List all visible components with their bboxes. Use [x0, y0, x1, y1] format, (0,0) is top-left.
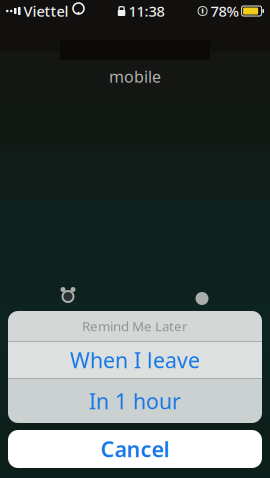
button[interactable]: Remind Me	[38, 284, 98, 306]
staticText: Remind Me Later	[82, 317, 188, 335]
button[interactable]: In 1 hour	[8, 379, 262, 423]
button[interactable]: Message	[172, 284, 232, 306]
staticText: In 1 hour	[89, 387, 181, 415]
button[interactable]: When I leave	[8, 342, 262, 378]
staticText: Cancel	[100, 435, 169, 463]
staticText: 78%	[211, 1, 239, 21]
staticText: When I leave	[70, 346, 200, 374]
staticText: Viettel	[23, 1, 68, 21]
staticText: mobile	[109, 66, 161, 87]
button[interactable]: Cancel	[8, 430, 262, 468]
staticText: 11:38	[129, 1, 165, 21]
